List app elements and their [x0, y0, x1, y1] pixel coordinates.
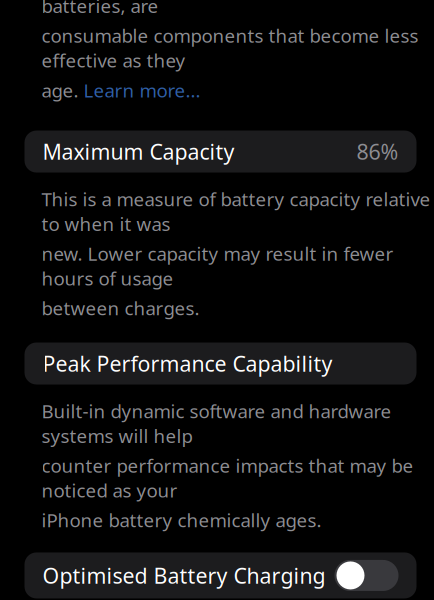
staticText: counter performance impacts that may be … — [41, 453, 413, 503]
button[interactable]: Peak Performance Capability — [24, 342, 416, 384]
staticText: between charges. — [41, 296, 199, 320]
button[interactable]: Optimised Battery Charging — [24, 552, 416, 598]
staticText: Peak Performance Capability — [42, 349, 332, 378]
button[interactable]: Learn more... — [83, 78, 200, 103]
staticText: Phone batteries, like all rechargeable b… — [41, 0, 369, 18]
staticText: consumable components that become less e… — [41, 23, 418, 73]
staticText: 86% — [356, 137, 398, 166]
staticText: Learn more... — [83, 78, 200, 103]
staticText: Built-in dynamic software and hardware s… — [41, 398, 391, 448]
staticText: new. Lower capacity may result in fewer … — [41, 241, 393, 291]
button[interactable]: Maximum Capacity — [24, 130, 416, 172]
staticText: Optimised Battery Charging — [42, 561, 325, 590]
staticText: age. — [41, 78, 83, 103]
staticText: This is a measure of battery capacity re… — [41, 186, 430, 236]
staticText: iPhone battery chemically ages. — [41, 508, 321, 532]
staticText: Maximum Capacity — [42, 137, 234, 166]
